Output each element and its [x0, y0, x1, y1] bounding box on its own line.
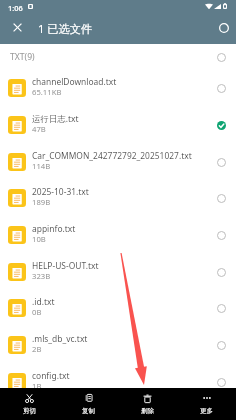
button[interactable]: 2025-10-31.txt [0, 179, 236, 216]
staticText: Car_COMMON_242772792_20251027.txt [32, 150, 192, 162]
button[interactable]: .mls_db_vc.txt [0, 326, 236, 363]
button[interactable]: Select [211, 262, 231, 282]
staticText: 189B [32, 197, 51, 207]
staticText: 运行日志.txt [32, 113, 79, 125]
button[interactable]: 删除 [118, 388, 177, 420]
staticText: 47B [32, 124, 46, 134]
staticText: 2025-10-31.txt [32, 186, 89, 198]
button[interactable]: TXT(9) [0, 44, 236, 69]
staticText: .mls_db_vc.txt [32, 333, 88, 345]
button[interactable]: channelDownload.txt [0, 69, 236, 106]
button[interactable]: 更多 [177, 388, 236, 420]
staticText: .id.txt [32, 296, 55, 308]
button[interactable]: Select [211, 298, 231, 318]
button[interactable]: Select [211, 115, 231, 135]
button[interactable]: Select [211, 372, 231, 392]
staticText: 更多 [200, 407, 213, 415]
staticText: 1:06 [8, 3, 23, 13]
button[interactable]: Select [211, 78, 231, 98]
staticText: HELP-US-OUT.txt [32, 260, 99, 272]
button[interactable]: Select [211, 152, 231, 172]
staticText: 323B [32, 271, 51, 281]
button[interactable]: config.txt [0, 363, 236, 400]
staticText: 0B [32, 307, 42, 317]
button[interactable]: appinfo.txt [0, 216, 236, 253]
button[interactable]: 剪切 [0, 388, 59, 420]
staticText: appinfo.txt [32, 223, 76, 235]
staticText: 2B [32, 344, 42, 354]
staticText: 剪切 [23, 407, 36, 415]
staticText: 复制 [82, 407, 95, 415]
staticText: 10B [32, 234, 46, 244]
button[interactable]: HELP-US-OUT.txt [0, 253, 236, 290]
staticText: 1 已选文件 [38, 21, 93, 36]
button[interactable]: .id.txt [0, 289, 236, 326]
staticText: channelDownload.txt [32, 76, 117, 88]
button[interactable]: Close [3, 13, 32, 42]
button[interactable]: Select [211, 188, 231, 208]
staticText: 1B [32, 381, 42, 391]
button[interactable]: Select [211, 225, 231, 245]
staticText: 114B [32, 161, 51, 171]
staticText: 65.11KB [32, 87, 62, 97]
button[interactable]: Car_COMMON_242772792_20251027.txt [0, 143, 236, 180]
staticText: 删除 [141, 407, 154, 415]
button[interactable]: Select all [209, 13, 236, 42]
button[interactable]: 运行日志.txt [0, 106, 236, 143]
staticText: config.txt [32, 370, 70, 382]
button[interactable]: 复制 [59, 388, 118, 420]
other: Select group [211, 47, 231, 67]
staticText: TXT(9) [10, 51, 35, 63]
button[interactable]: Select [211, 335, 231, 355]
